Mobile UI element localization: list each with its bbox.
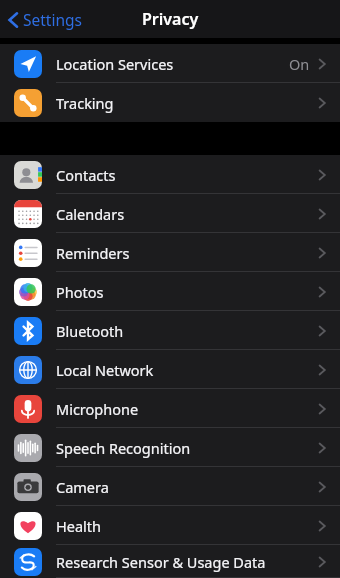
staticText: Privacy: [142, 8, 199, 30]
staticText: Calendars: [56, 204, 318, 224]
staticText: Reminders: [56, 243, 318, 263]
button[interactable]: Reminders: [0, 233, 340, 272]
button[interactable]: Speech Recognition: [0, 428, 340, 467]
button[interactable]: Microphone: [0, 389, 340, 428]
staticText: Contacts: [56, 165, 318, 185]
button[interactable]: Location Services: [0, 44, 340, 83]
button[interactable]: Settings: [6, 5, 84, 34]
staticText: Location Services: [56, 54, 289, 74]
staticText: Photos: [56, 282, 318, 302]
button[interactable]: Calendars: [0, 194, 340, 233]
staticText: Microphone: [56, 399, 318, 419]
staticText: On: [289, 54, 310, 74]
staticText: Speech Recognition: [56, 438, 318, 458]
button[interactable]: Contacts: [0, 155, 340, 194]
staticText: Tracking: [56, 93, 318, 113]
button[interactable]: Camera: [0, 467, 340, 506]
staticText: Health: [56, 516, 318, 536]
button[interactable]: Research Sensor & Usage Data: [0, 545, 340, 578]
staticText: Camera: [56, 477, 318, 497]
staticText: Bluetooth: [56, 321, 318, 341]
button[interactable]: Local Network: [0, 350, 340, 389]
button[interactable]: Health: [0, 506, 340, 545]
button[interactable]: Photos: [0, 272, 340, 311]
button[interactable]: Bluetooth: [0, 311, 340, 350]
button[interactable]: Tracking: [0, 83, 340, 122]
staticText: Settings: [23, 9, 82, 30]
staticText: Local Network: [56, 360, 318, 380]
staticText: Research Sensor & Usage Data: [56, 552, 318, 572]
